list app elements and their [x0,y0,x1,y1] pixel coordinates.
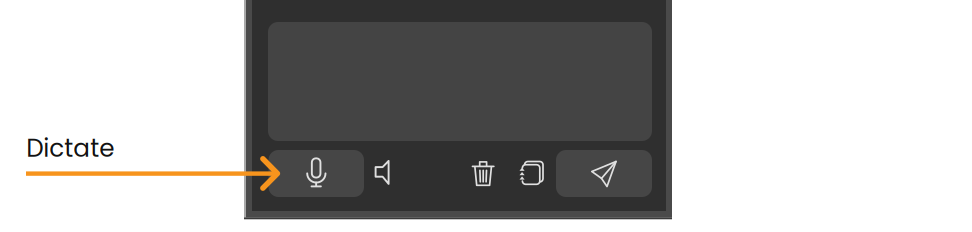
button[interactable]: Dictate [268,150,364,197]
button[interactable]: Send [556,150,652,197]
staticText: Dictate [26,131,114,165]
button[interactable]: Play back [360,150,406,197]
button[interactable]: Scribble [510,150,556,197]
button[interactable]: Delete [461,151,507,198]
